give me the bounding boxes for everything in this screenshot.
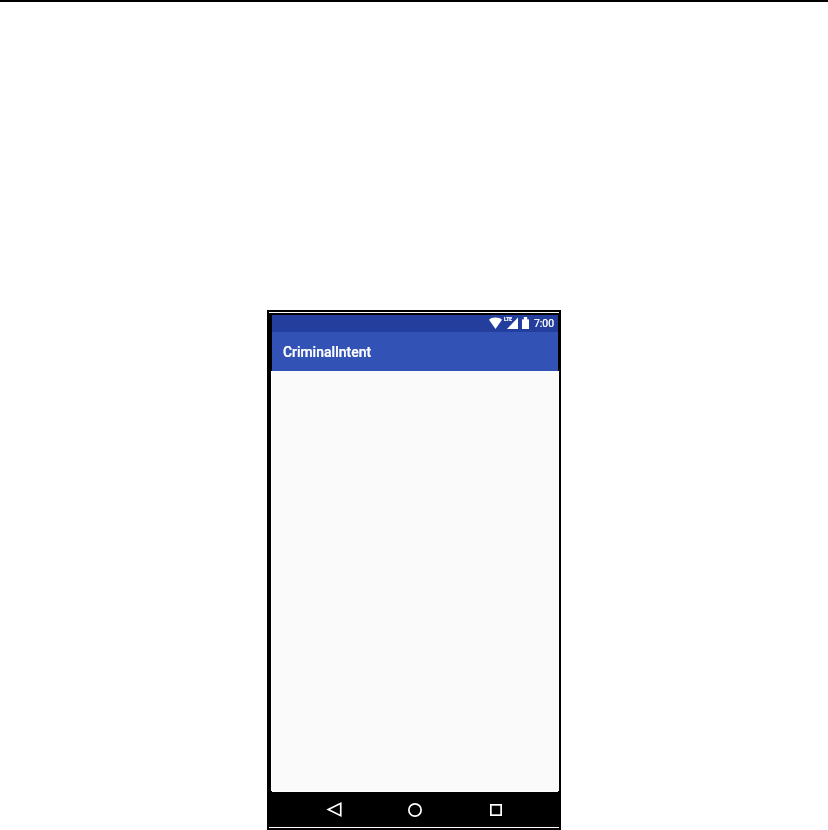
- button[interactable]: Home: [391, 792, 439, 827]
- button[interactable]: CriminalIntent: [272, 332, 558, 371]
- button[interactable]: Back: [310, 792, 358, 827]
- staticText: LTE: [504, 316, 512, 322]
- staticText: CriminalIntent: [283, 344, 372, 360]
- staticText: 7:00: [534, 317, 555, 329]
- button[interactable]: Recent apps: [472, 792, 520, 827]
